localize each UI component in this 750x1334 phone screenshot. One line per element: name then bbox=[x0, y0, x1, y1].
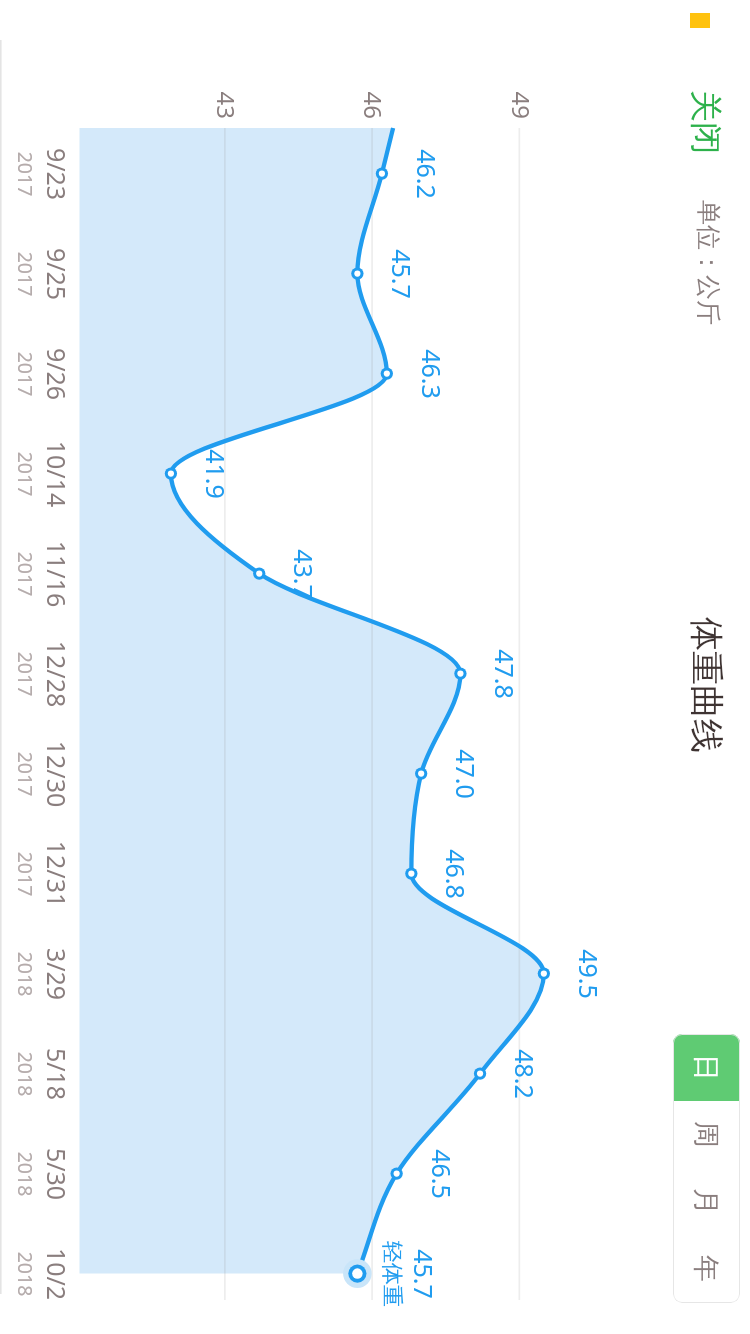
staticText: 5/30 bbox=[40, 1114, 74, 1234]
staticText: 9/25 bbox=[40, 214, 74, 334]
staticText: 日 bbox=[689, 1054, 723, 1081]
staticText: 47.8 bbox=[488, 614, 522, 734]
staticText: 9/26 bbox=[40, 314, 74, 434]
button[interactable]: 周 bbox=[673, 1101, 740, 1168]
staticText: 46.8 bbox=[439, 814, 473, 934]
staticText: 12/30 bbox=[40, 714, 74, 834]
staticText: 43.7 bbox=[287, 514, 321, 634]
staticText: 41.9 bbox=[199, 414, 233, 534]
staticText: 49.5 bbox=[572, 914, 606, 1034]
staticText: 年 bbox=[689, 1255, 723, 1282]
staticText: 12/28 bbox=[40, 614, 74, 734]
staticText: 10/2 bbox=[40, 1214, 74, 1334]
staticText: 5/18 bbox=[40, 1014, 74, 1134]
staticText: 46 bbox=[357, 51, 390, 119]
staticText: 49 bbox=[505, 51, 538, 119]
staticText: 9/23 bbox=[40, 114, 74, 234]
staticText: 46.3 bbox=[415, 314, 449, 434]
staticText: 2017 bbox=[12, 514, 39, 634]
staticText: 2018 bbox=[12, 1014, 39, 1134]
staticText: 10/14 bbox=[40, 414, 74, 534]
button[interactable]: 关闭 bbox=[693, 78, 739, 166]
staticText: 12/31 bbox=[40, 814, 74, 934]
staticText: 2018 bbox=[12, 1114, 39, 1234]
staticText: 43 bbox=[210, 51, 243, 119]
staticText: 2018 bbox=[12, 1214, 39, 1334]
staticText: 2017 bbox=[12, 114, 39, 234]
staticText: 月 bbox=[689, 1188, 723, 1215]
button[interactable]: 日 bbox=[673, 1034, 740, 1101]
button[interactable]: 月 bbox=[673, 1168, 740, 1235]
staticText: 轻体重 bbox=[378, 1214, 406, 1334]
staticText: 体重曲线 bbox=[685, 617, 728, 753]
staticText: 46.2 bbox=[410, 114, 444, 234]
staticText: 47.0 bbox=[449, 714, 483, 834]
staticText: 2017 bbox=[12, 814, 39, 934]
staticText: 46.5 bbox=[425, 1114, 459, 1234]
staticText: 45.7 bbox=[407, 1214, 441, 1334]
staticText: 周 bbox=[689, 1121, 723, 1148]
button[interactable]: 年 bbox=[673, 1235, 740, 1302]
staticText: 2017 bbox=[12, 314, 39, 434]
staticText: 2017 bbox=[12, 214, 39, 334]
staticText: 11/16 bbox=[40, 514, 74, 634]
staticText: 单位：公斤 bbox=[693, 200, 724, 325]
staticText: 2018 bbox=[12, 914, 39, 1034]
staticText: 2017 bbox=[12, 414, 39, 534]
staticText: 45.7 bbox=[385, 214, 419, 334]
staticText: 2017 bbox=[12, 614, 39, 734]
staticText: 2017 bbox=[12, 714, 39, 834]
staticText: 关闭 bbox=[686, 90, 726, 154]
staticText: 3/29 bbox=[40, 914, 74, 1034]
staticText: 48.2 bbox=[508, 1014, 542, 1134]
